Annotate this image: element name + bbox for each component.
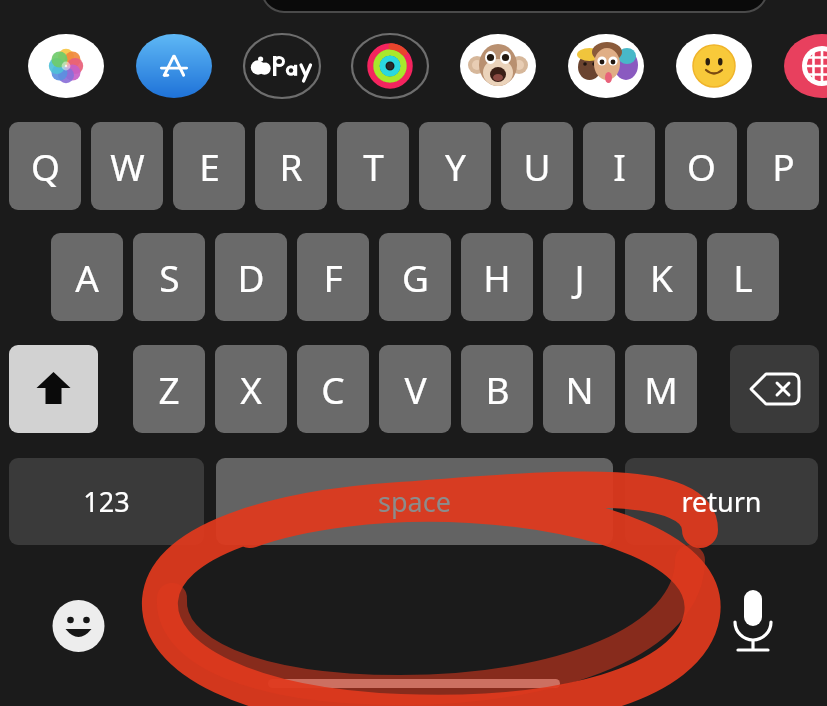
button[interactable]: R [255, 122, 327, 210]
button[interactable]: Dictation [725, 590, 782, 655]
button[interactable]: space [216, 458, 613, 545]
staticText: M [644, 364, 678, 414]
staticText: P [772, 141, 795, 191]
staticText: L [733, 252, 753, 302]
staticText: W [110, 141, 145, 191]
button[interactable]: Shift [9, 345, 98, 433]
button[interactable]: L [707, 233, 779, 321]
button[interactable]: Z [133, 345, 205, 433]
staticText: V [404, 364, 427, 414]
button[interactable]: B [461, 345, 533, 433]
staticText: D [237, 252, 265, 302]
staticText: C [321, 364, 345, 414]
button[interactable]: C [297, 345, 369, 433]
button[interactable]: W [91, 122, 163, 210]
button[interactable]: F [297, 233, 369, 321]
staticText: 123 [83, 483, 130, 520]
button[interactable]: Globe app [784, 34, 827, 98]
button[interactable]: Backspace [730, 345, 819, 433]
staticText: U [523, 141, 551, 191]
button[interactable]: O [665, 122, 737, 210]
button[interactable]: A [51, 233, 123, 321]
button[interactable]: U [501, 122, 573, 210]
staticText: space [378, 483, 451, 520]
button[interactable]: E [173, 122, 245, 210]
button[interactable]: Photos [28, 34, 104, 98]
button[interactable]: K [625, 233, 697, 321]
button[interactable]: J [543, 233, 615, 321]
button[interactable]: G [379, 233, 451, 321]
button[interactable]: M [625, 345, 697, 433]
button[interactable]: X [215, 345, 287, 433]
button[interactable]: I [583, 122, 655, 210]
staticText: O [687, 141, 716, 191]
staticText: N [565, 364, 594, 414]
button[interactable]: App Store [136, 34, 212, 98]
staticText: F [323, 252, 343, 302]
button[interactable]: Apple Pay [244, 34, 320, 98]
staticText: X [240, 364, 262, 414]
staticText: return [681, 483, 762, 520]
button[interactable]: Memoji [568, 34, 644, 98]
staticText: J [574, 252, 585, 302]
button[interactable]: N [543, 345, 615, 433]
button[interactable]: Smiley sticker [676, 34, 752, 98]
button[interactable]: D [215, 233, 287, 321]
staticText: Z [158, 364, 180, 414]
staticText: Y [445, 141, 466, 191]
button[interactable]: H [461, 233, 533, 321]
button[interactable]: Y [419, 122, 491, 210]
staticText: B [485, 364, 510, 414]
button[interactable]: V [379, 345, 451, 433]
button[interactable]: return [625, 458, 818, 545]
staticText: I [613, 141, 626, 191]
button[interactable]: 123 [9, 458, 204, 545]
button[interactable]: S [133, 233, 205, 321]
staticText: S [159, 252, 180, 302]
button[interactable]: P [747, 122, 819, 210]
button[interactable]: Activity [352, 34, 428, 98]
staticText: E [199, 141, 220, 191]
button[interactable]: T [337, 122, 409, 210]
staticText: R [279, 141, 303, 191]
staticText: A [75, 252, 99, 302]
button[interactable]: Monkey Memoji [460, 34, 536, 98]
button[interactable]: Q [9, 122, 81, 210]
staticText: K [650, 252, 673, 302]
staticText: T [363, 141, 384, 191]
button[interactable]: Emoji keyboard [50, 598, 107, 655]
staticText: Q [31, 141, 60, 191]
staticText: H [483, 252, 511, 302]
staticText: G [402, 252, 429, 302]
